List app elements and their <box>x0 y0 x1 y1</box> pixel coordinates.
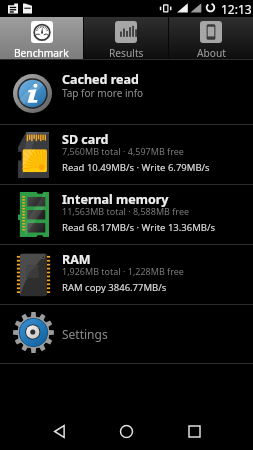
button[interactable]: Home <box>99 412 153 450</box>
button[interactable]: About <box>169 17 253 59</box>
button[interactable]: Settings <box>0 305 253 363</box>
button[interactable]: Recent apps <box>167 412 221 450</box>
staticText: Tap for more info <box>62 86 144 100</box>
staticText: Cached read <box>62 71 139 88</box>
button[interactable]: Results <box>84 17 168 59</box>
button[interactable]: Internal memory <box>0 185 253 244</box>
staticText: Results <box>109 46 144 60</box>
staticText: Internal memory <box>62 191 169 208</box>
button[interactable]: Benchmark <box>0 17 83 59</box>
button[interactable]: Cached read <box>0 60 253 124</box>
button[interactable]: Back <box>32 412 86 450</box>
staticText: 11,563MB total · 8,588MB free <box>62 205 190 217</box>
staticText: Read 68.17MB/s · Write 13.36MB/s <box>62 221 216 234</box>
staticText: 7,560MB total · 4,597MB free <box>62 145 184 157</box>
staticText: Read 10.49MB/s · Write 6.79MB/s <box>62 161 210 174</box>
staticText: RAM <box>62 251 91 268</box>
staticText: RAM copy 3846.77MB/s <box>62 281 167 294</box>
staticText: Benchmark <box>14 46 69 60</box>
button[interactable]: SD card <box>0 125 253 184</box>
button[interactable]: RAM <box>0 245 253 304</box>
staticText: 12:13 <box>221 1 252 17</box>
staticText: SD card <box>62 131 109 148</box>
staticText: Settings <box>62 326 108 342</box>
staticText: About <box>197 46 226 60</box>
staticText: 1,926MB total · 1,228MB free <box>62 265 184 277</box>
